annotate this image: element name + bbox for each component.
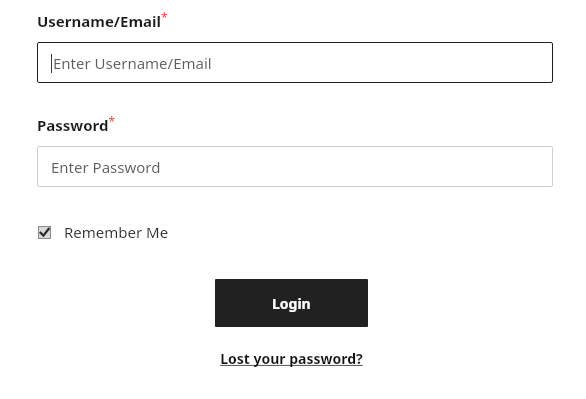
staticText: Enter Username/Email [53,53,212,73]
staticText: Password* [37,113,116,136]
button[interactable]: Enter Password [37,146,553,187]
button[interactable]: Lost your password? [218,348,365,369]
staticText: Enter Password [51,157,161,177]
staticText: Remember Me [64,222,169,242]
staticText: Login [272,294,311,313]
button[interactable]: Enter Username/Email [37,42,553,83]
button[interactable]: Login [215,279,368,327]
staticText: Username/Email* [37,9,168,32]
staticText: Lost your password? [220,349,363,368]
button[interactable]: Remember Me [37,220,170,244]
